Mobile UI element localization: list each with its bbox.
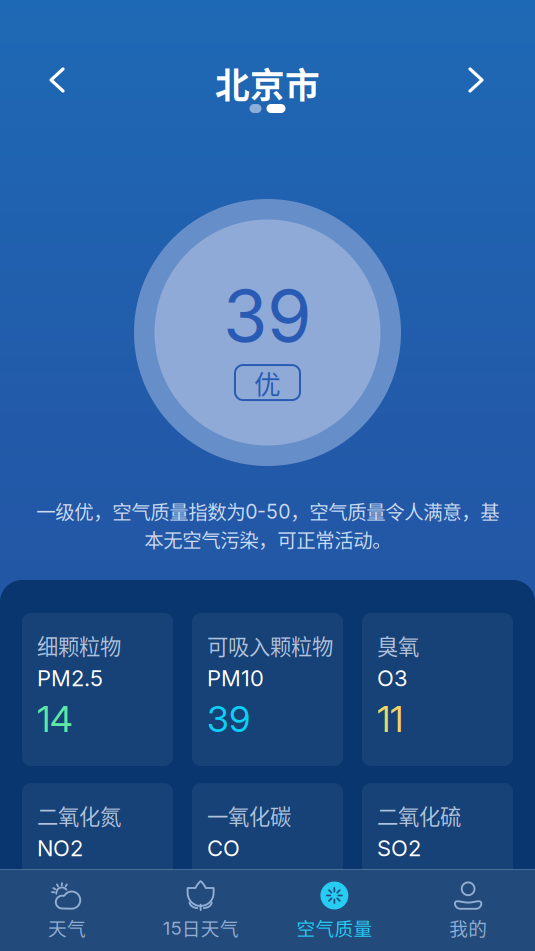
- staticText: 一级优，空气质量指数为0-50，空气质量令人满意，基本无空气污染，可正常活动。: [36, 497, 499, 553]
- staticText: 二氧化硫: [377, 800, 461, 831]
- staticText: 臭氧: [377, 630, 419, 661]
- staticText: 优: [254, 363, 281, 402]
- staticText: 39: [223, 272, 312, 359]
- staticText: 11: [377, 697, 403, 741]
- staticText: 细颗粒物: [37, 630, 121, 661]
- button[interactable]: 我的: [401, 870, 535, 951]
- staticText: 0.4: [207, 867, 260, 911]
- staticText: CO: [207, 835, 240, 862]
- staticText: 空气质量: [296, 914, 372, 941]
- button[interactable]: 细颗粒物: [22, 613, 173, 766]
- staticText: O3: [377, 665, 408, 692]
- button[interactable]: 15日天气: [134, 870, 268, 951]
- staticText: NO2: [37, 835, 83, 862]
- button[interactable]: 天气: [0, 870, 134, 951]
- staticText: 一氧化碳: [207, 800, 291, 831]
- button[interactable]: 臭氧: [362, 613, 513, 766]
- staticText: 二氧化氮: [37, 800, 121, 831]
- button[interactable]: Previous city: [36, 59, 80, 103]
- staticText: 我的: [449, 914, 487, 941]
- staticText: 39: [207, 697, 250, 741]
- staticText: 天气: [48, 914, 86, 941]
- staticText: PM10: [207, 665, 264, 692]
- button[interactable]: 一氧化碳: [192, 783, 343, 936]
- staticText: 16: [37, 867, 71, 911]
- button[interactable]: 空气质量: [267, 870, 401, 951]
- button[interactable]: 二氧化硫: [362, 783, 513, 936]
- button[interactable]: 可吸入颗粒物: [192, 613, 343, 766]
- staticText: 北京市: [215, 58, 320, 108]
- staticText: 可吸入颗粒物: [207, 630, 333, 661]
- staticText: 3: [377, 867, 399, 911]
- button[interactable]: 二氧化氮: [22, 783, 173, 936]
- staticText: 15日天气: [163, 914, 239, 941]
- staticText: PM2.5: [37, 665, 103, 692]
- staticText: SO2: [377, 835, 421, 862]
- staticText: 14: [37, 697, 73, 741]
- button[interactable]: Next city: [455, 59, 499, 103]
